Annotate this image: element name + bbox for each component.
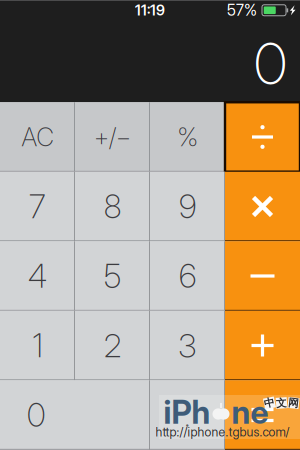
- staticText: iPh: [163, 393, 210, 431]
- staticText: .: [184, 396, 191, 434]
- staticText: 1: [32, 326, 42, 365]
- staticText: AC: [21, 122, 53, 152]
- button[interactable]: 2: [75, 311, 150, 380]
- staticText: 57%: [227, 1, 257, 20]
- button[interactable]: Add: [225, 311, 300, 380]
- staticText: 11:19: [135, 1, 165, 19]
- staticText: 中: [264, 396, 275, 410]
- button[interactable]: 3: [150, 311, 225, 380]
- button[interactable]: Multiply: [225, 172, 300, 241]
- staticText: 0: [27, 396, 45, 434]
- staticText: 0: [254, 29, 287, 98]
- button[interactable]: 1: [0, 311, 75, 380]
- staticText: 网: [288, 396, 299, 410]
- button[interactable]: Divide: [225, 102, 300, 172]
- button[interactable]: .: [150, 380, 225, 450]
- button[interactable]: 0: [0, 380, 150, 450]
- staticText: 4: [28, 257, 47, 295]
- staticText: 文: [276, 396, 287, 410]
- button[interactable]: AC: [0, 102, 75, 172]
- staticText: ne: [231, 393, 268, 431]
- staticText: 2: [104, 326, 121, 365]
- button[interactable]: 4: [0, 241, 75, 311]
- button[interactable]: 7: [0, 172, 75, 241]
- staticText: http://iphone.tgbus.com/: [155, 424, 289, 439]
- button[interactable]: 9: [150, 172, 225, 241]
- staticText: 7: [29, 187, 46, 226]
- staticText: 8: [104, 187, 121, 226]
- staticText: 3: [178, 326, 196, 365]
- button[interactable]: 6: [150, 241, 225, 311]
- button[interactable]: +/−: [75, 102, 150, 172]
- button[interactable]: Equals: [225, 380, 300, 450]
- button[interactable]: 8: [75, 172, 150, 241]
- staticText: %: [177, 122, 197, 152]
- button[interactable]: 5: [75, 241, 150, 311]
- staticText: 5: [104, 257, 121, 295]
- button[interactable]: %: [150, 102, 225, 172]
- staticText: 6: [179, 257, 196, 295]
- staticText: +/−: [94, 122, 131, 152]
- button[interactable]: Subtract: [225, 241, 300, 311]
- staticText: 9: [179, 187, 196, 226]
